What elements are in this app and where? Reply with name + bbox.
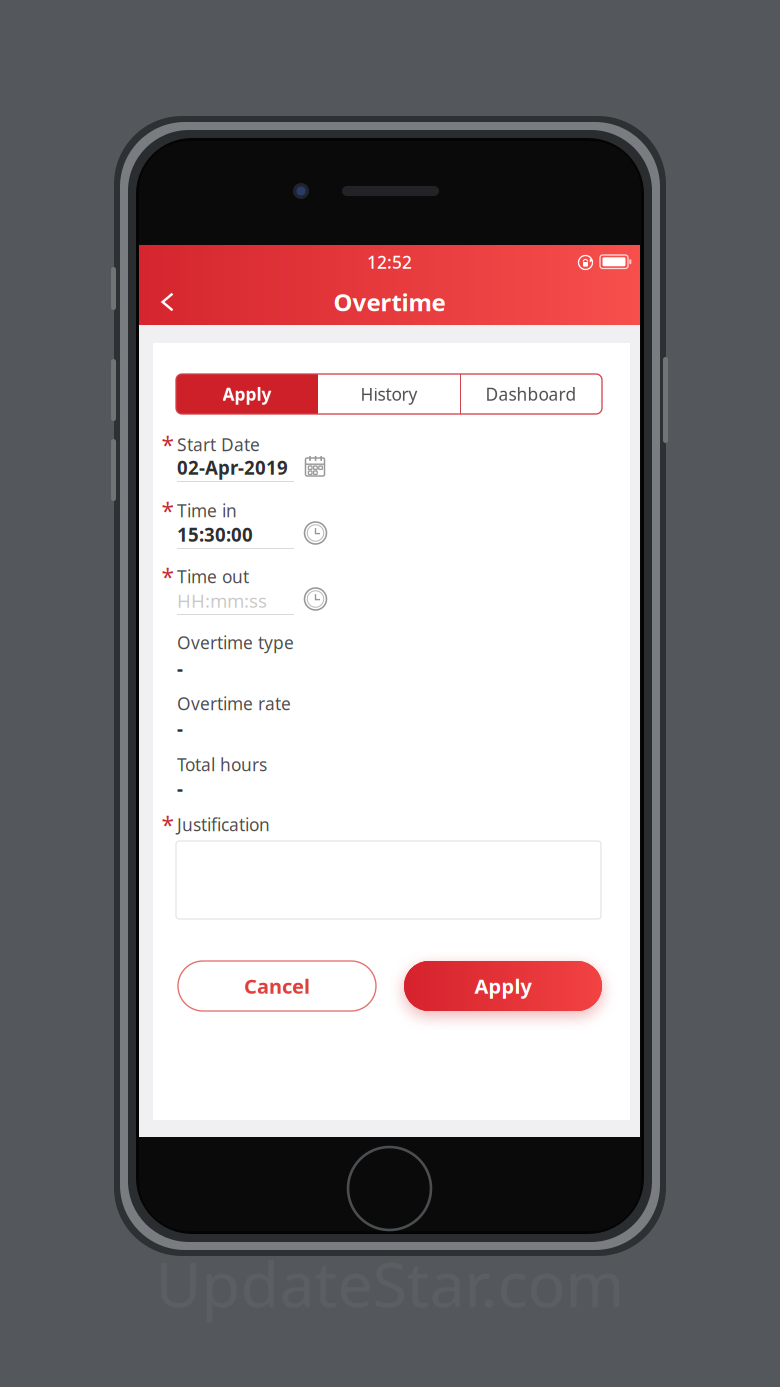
staticText: Overtime [333, 286, 445, 318]
staticText: Apply [474, 973, 531, 999]
staticText: History [360, 382, 417, 405]
staticText: Overtime rate [177, 692, 291, 715]
staticText: Total hours [177, 753, 267, 776]
staticText: 12:52 [367, 250, 412, 273]
staticText: Overtime type [177, 631, 294, 654]
staticText: Time out [177, 565, 249, 588]
staticText: Cancel [244, 973, 310, 999]
button[interactable]: Back [146, 279, 190, 325]
staticText: - [177, 716, 183, 741]
button[interactable]: Dashboard [460, 374, 602, 414]
staticText: 02-Apr-2019 [177, 455, 288, 480]
button[interactable]: Apply [176, 374, 318, 414]
button[interactable]: Apply [404, 961, 602, 1011]
staticText: Start Date [177, 433, 260, 456]
button[interactable]: History [318, 374, 460, 414]
staticText: * [161, 430, 173, 460]
staticText: Time in [177, 499, 237, 522]
staticText: - [177, 656, 183, 681]
staticText: Dashboard [485, 382, 576, 405]
staticText: UpdateStar.com [155, 1241, 624, 1325]
button[interactable]: Time in, 15:30:00 [177, 522, 332, 549]
staticText: * [161, 562, 173, 592]
staticText: * [161, 810, 173, 840]
button[interactable]: Cancel [178, 961, 376, 1011]
staticText: - [177, 776, 183, 801]
staticText: 15:30:00 [177, 522, 253, 547]
button[interactable]: Start Date, 02-Apr-2019 [177, 455, 332, 482]
staticText: * [161, 496, 173, 526]
staticText: Apply [222, 382, 271, 405]
staticText: Justification [177, 813, 270, 836]
staticText: HH:mm:ss [177, 588, 267, 613]
button[interactable]: Time out [177, 588, 332, 615]
